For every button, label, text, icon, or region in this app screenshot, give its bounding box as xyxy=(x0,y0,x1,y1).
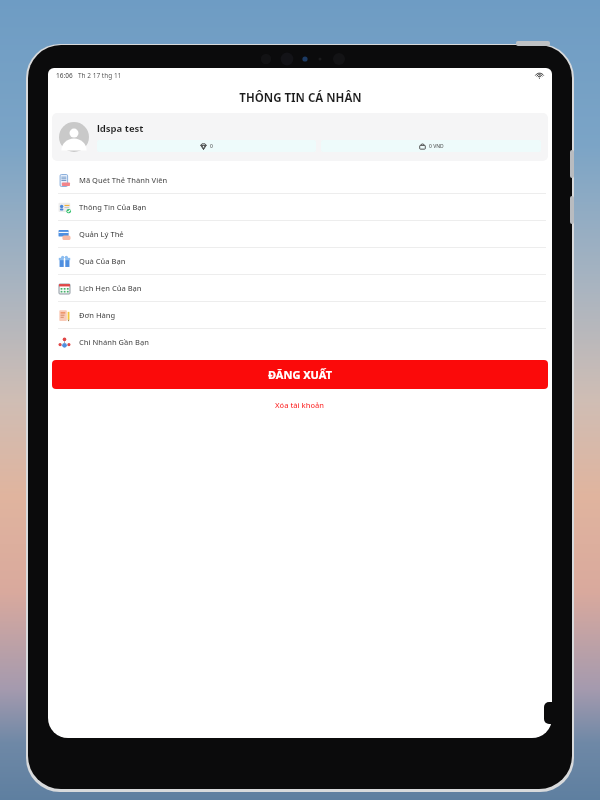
staticText: Chi Nhánh Gần Bạn xyxy=(79,337,149,347)
button[interactable]: Quà Của Bạn xyxy=(48,248,552,274)
staticText: Lịch Hẹn Của Bạn xyxy=(79,283,142,293)
button[interactable]: Quản Lý Thẻ xyxy=(48,221,552,247)
button[interactable]: Mã Quét Thẻ Thành Viên xyxy=(48,167,552,193)
staticText: 0 VND xyxy=(429,143,444,150)
staticText: 16:06 xyxy=(56,71,73,80)
button[interactable]: ĐĂNG XUẤT xyxy=(52,360,548,389)
button[interactable]: Đơn Hàng xyxy=(48,302,552,328)
button[interactable]: Chi Nhánh Gần Bạn xyxy=(48,329,552,355)
staticText: Xóa tài khoản xyxy=(275,400,325,410)
staticText: Quà Của Bạn xyxy=(79,256,126,266)
button[interactable]: Xóa tài khoản xyxy=(265,398,335,412)
button[interactable]: Lịch Hẹn Của Bạn xyxy=(48,275,552,301)
staticText: THÔNG TIN CÁ NHÂN xyxy=(239,90,362,106)
button[interactable]: Thông Tin Của Bạn xyxy=(48,194,552,220)
staticText: Quản Lý Thẻ xyxy=(79,229,124,239)
staticText: ĐĂNG XUẤT xyxy=(268,367,332,382)
button[interactable]: 0 VND xyxy=(321,140,541,152)
staticText: ldspa test xyxy=(97,122,144,135)
staticText: Thông Tin Của Bạn xyxy=(79,202,147,212)
staticText: Đơn Hàng xyxy=(79,310,116,320)
staticText: 0 xyxy=(210,143,213,150)
button[interactable]: 0 xyxy=(97,140,316,152)
staticText: Mã Quét Thẻ Thành Viên xyxy=(79,175,168,185)
staticText: Th 2 17 thg 11 xyxy=(78,71,122,80)
